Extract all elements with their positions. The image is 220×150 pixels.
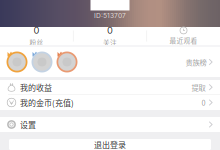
staticText: 粉丝 xyxy=(29,38,43,47)
button[interactable]: 退出登录 xyxy=(9,139,211,150)
button[interactable]: 0 xyxy=(73,27,146,45)
staticText: 0 xyxy=(107,25,113,36)
staticText: 我的收益 xyxy=(20,81,52,93)
staticText: 0 xyxy=(33,25,39,36)
staticText: 退出登录 xyxy=(94,139,126,150)
staticText: 贵族榜 xyxy=(185,57,206,67)
staticText: 最近观看 xyxy=(169,35,197,45)
button[interactable]: 我的收益 xyxy=(0,80,220,95)
staticText: 关注 xyxy=(103,38,117,47)
button[interactable]: 最近观看 xyxy=(147,27,220,45)
button[interactable]: 我的金币(充值) xyxy=(0,95,220,110)
staticText: ID:513707 xyxy=(94,11,126,20)
button[interactable]: 0 xyxy=(0,27,73,45)
button[interactable]: 贵族榜 xyxy=(185,57,213,67)
button[interactable]: 设置 xyxy=(0,117,220,132)
staticText: 我的金币(充值) xyxy=(20,97,74,108)
staticText: 设置 xyxy=(20,119,36,130)
staticText: 0 xyxy=(201,97,205,108)
staticText: 提取 xyxy=(191,82,205,92)
